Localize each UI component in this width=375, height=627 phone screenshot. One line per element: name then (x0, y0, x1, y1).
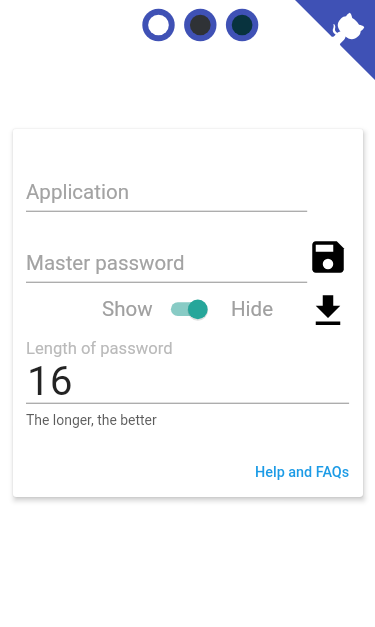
button[interactable]: Dark theme (183, 8, 217, 42)
button[interactable]: Help and FAQs (254, 459, 350, 487)
button[interactable]: Show or hide the password (166, 298, 210, 322)
staticText: 16 (27, 357, 73, 405)
button[interactable]: Application (26, 175, 307, 212)
staticText: The longer, the better (26, 412, 157, 428)
button[interactable]: Master password (26, 246, 307, 283)
staticText: Master password (26, 251, 185, 275)
staticText: Length of password (26, 339, 173, 358)
button[interactable]: Download password (307, 290, 349, 332)
button[interactable]: Teal theme (225, 8, 259, 42)
button[interactable]: Save password profile (307, 236, 349, 278)
button[interactable]: Fork me on GitHub (295, 0, 375, 80)
staticText: Help and FAQs (255, 464, 350, 481)
staticText: Application (26, 180, 129, 204)
button[interactable]: Light theme (141, 8, 175, 42)
button[interactable]: Length of password (26, 335, 349, 410)
staticText: Show (102, 297, 153, 321)
staticText: Hide (231, 297, 274, 321)
